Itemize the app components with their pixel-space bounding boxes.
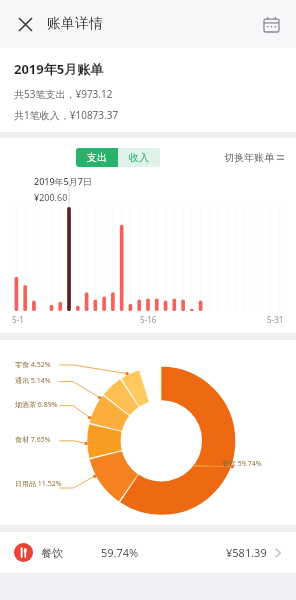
button[interactable]: Calendar [254, 7, 288, 41]
staticText: 食材 7.65% [15, 435, 51, 445]
staticText: 账单详情 [47, 15, 103, 33]
staticText: 支出 [87, 151, 107, 164]
staticText: 日用品 11.52% [15, 479, 62, 489]
button[interactable]: 收入 [118, 148, 160, 167]
staticText: 通讯 5.14% [15, 376, 51, 386]
staticText: ¥200.60 [34, 191, 68, 203]
staticText: 餐饮 59.74% [222, 459, 262, 469]
staticText: 共53笔支出，¥973.12 [14, 87, 113, 101]
staticText: 零食 4.52% [15, 360, 51, 370]
staticText: 5-1 [12, 314, 24, 325]
staticText: 烟酒茶 6.89% [15, 400, 58, 410]
staticText: 5-31 [267, 314, 284, 325]
staticText: ¥581.39 [226, 545, 267, 560]
button[interactable]: 切换年账单 [222, 148, 286, 167]
staticText: 2019年5月账单 [14, 60, 104, 78]
staticText: 餐饮 [41, 546, 63, 560]
staticText: 切换年账单 [224, 151, 274, 164]
staticText: 共1笔收入，¥10873.37 [14, 108, 119, 122]
staticText: 5-16 [140, 314, 157, 325]
button[interactable]: Close [8, 7, 42, 41]
button[interactable]: 餐饮 [0, 532, 296, 573]
staticText: 59.74% [101, 545, 139, 560]
staticText: 2019年5月7日 [34, 175, 92, 187]
staticText: 收入 [129, 151, 149, 164]
button[interactable]: 支出 [76, 148, 118, 167]
